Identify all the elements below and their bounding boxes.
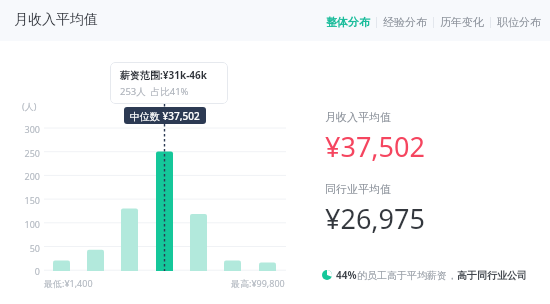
staticText: 职位分布 [497, 15, 541, 29]
staticText: 0 [14, 265, 40, 277]
staticText: 中位数 ¥37,502 [130, 109, 200, 123]
staticText: 经验分布 [383, 15, 427, 29]
staticText: 250 [14, 147, 40, 159]
button[interactable]: 薪资范围:¥31k-46k [110, 62, 228, 104]
staticText: (人) [22, 100, 37, 112]
other: 占比图标 [322, 270, 332, 280]
staticText: 最高:¥99,800 [231, 277, 285, 289]
staticText: 50 [14, 242, 40, 254]
staticText: 历年变化 [440, 15, 484, 29]
staticText: 同行业平均值 [325, 182, 391, 196]
button[interactable]: 占比图标 [322, 268, 527, 282]
staticText: 高于同行业公司 [457, 269, 527, 282]
button[interactable]: 中位数 ¥37,502 [124, 107, 206, 124]
staticText: 150 [14, 194, 40, 206]
staticText: ¥26,975 [325, 200, 425, 237]
button[interactable]: 历年变化 [436, 13, 488, 31]
staticText: 整体分布 [326, 15, 370, 29]
staticText: 300 [14, 123, 40, 135]
staticText: 薪资范围:¥31k-46k [120, 68, 208, 82]
button[interactable]: 经验分布 [379, 13, 431, 31]
staticText: 月收入平均值 [325, 110, 391, 124]
button[interactable]: 职位分布 [493, 13, 545, 31]
staticText: 100 [14, 218, 40, 230]
staticText: 月收入平均值 [14, 11, 98, 29]
staticText: 44% [336, 268, 357, 282]
staticText: ¥37,502 [325, 128, 425, 165]
button[interactable]: 整体分布 [322, 13, 374, 31]
staticText: 253人 占比41% [120, 85, 189, 98]
staticText: 的员工高于平均薪资， [357, 269, 457, 282]
staticText: 最低:¥1,400 [44, 277, 93, 289]
staticText: 200 [14, 170, 40, 182]
